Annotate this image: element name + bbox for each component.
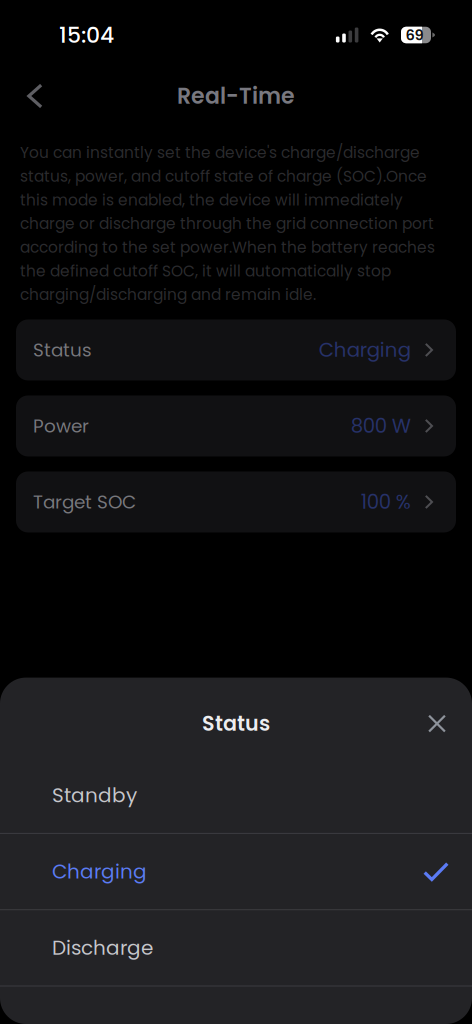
staticText: Status bbox=[33, 337, 92, 363]
staticText: Discharge bbox=[52, 934, 153, 962]
staticText: You can instantly set the device's charg… bbox=[20, 142, 435, 305]
staticText: Standby bbox=[52, 781, 137, 809]
button[interactable]: Power bbox=[16, 395, 456, 456]
staticText: 100 % bbox=[361, 488, 411, 516]
button[interactable]: Charging bbox=[0, 834, 472, 909]
button[interactable]: Standby bbox=[0, 758, 472, 833]
button[interactable]: Status bbox=[16, 319, 456, 380]
button[interactable]: Discharge bbox=[0, 910, 472, 985]
button[interactable]: Target SOC bbox=[16, 471, 456, 532]
staticText: 69 bbox=[405, 25, 423, 45]
staticText: Power bbox=[33, 413, 89, 439]
button[interactable]: Back bbox=[0, 72, 70, 120]
staticText: 15:04 bbox=[59, 20, 114, 50]
staticText: Status bbox=[202, 709, 270, 738]
staticText: Charging bbox=[52, 857, 147, 885]
staticText: Charging bbox=[319, 336, 411, 364]
staticText: 800 W bbox=[351, 412, 411, 440]
staticText: Real-Time bbox=[177, 81, 295, 111]
button[interactable]: Close bbox=[411, 701, 463, 747]
staticText: Target SOC bbox=[33, 489, 136, 515]
